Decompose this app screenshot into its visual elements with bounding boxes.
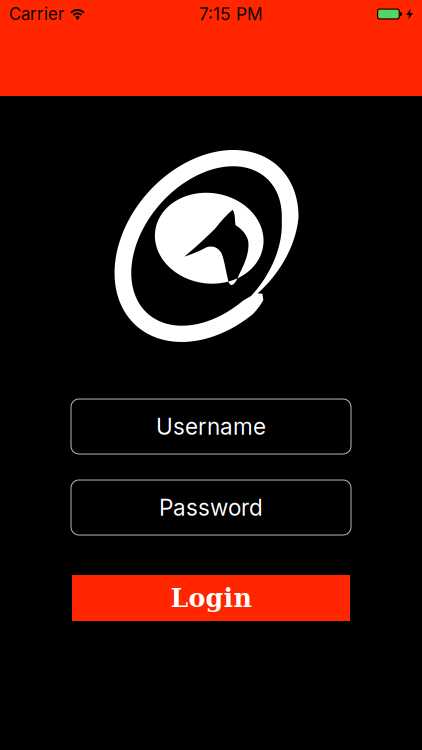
staticText: Username xyxy=(156,413,266,440)
staticText: 7:15 PM xyxy=(199,3,263,24)
button[interactable]: Password xyxy=(71,480,351,535)
button[interactable]: Login xyxy=(72,575,350,621)
staticText: Carrier xyxy=(9,4,64,24)
staticText: Login xyxy=(170,583,251,613)
staticText: Password xyxy=(159,494,263,521)
button[interactable]: Username xyxy=(71,399,351,454)
